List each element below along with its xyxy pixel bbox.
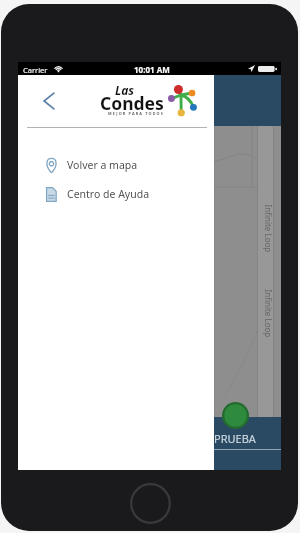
staticText: Infinite Loop <box>262 204 273 252</box>
staticText: 10:01 AM <box>134 64 170 75</box>
staticText: Infinite Loop <box>262 289 273 337</box>
button[interactable]: Centro de Ayuda <box>18 185 214 203</box>
staticText: Volver a mapa <box>67 158 138 172</box>
staticText: MEJOR PARA TODOS <box>108 111 164 116</box>
button[interactable]: Back <box>36 88 62 114</box>
staticText: Centro de Ayuda <box>67 187 150 201</box>
staticText: PRUEBA <box>214 431 256 446</box>
staticText: Carrier <box>23 65 48 75</box>
staticText: Condes <box>100 91 164 115</box>
button[interactable]: Volver a mapa <box>18 156 214 174</box>
staticText: Las <box>115 82 135 98</box>
